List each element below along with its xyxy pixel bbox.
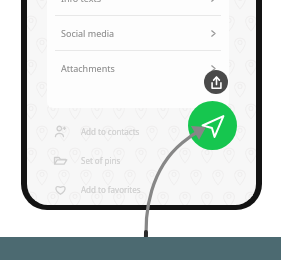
staticText: Info texts <box>61 0 101 4</box>
button[interactable]: Info texts <box>47 0 229 15</box>
button[interactable]: Set of pins <box>53 151 213 169</box>
button[interactable]: Share <box>204 70 228 94</box>
staticText: Attachments <box>61 62 115 74</box>
button[interactable]: Attachments <box>47 51 229 85</box>
staticText: Add to favorites <box>81 184 141 195</box>
staticText: Social media <box>61 27 115 39</box>
button[interactable]: Social media <box>47 16 229 50</box>
staticText: Set of pins <box>81 155 121 166</box>
button[interactable]: Navigate <box>188 101 237 150</box>
button[interactable]: Add to favorites <box>53 180 213 198</box>
button[interactable]: Add to contacts <box>53 122 213 140</box>
staticText: Add to contacts <box>81 126 140 137</box>
